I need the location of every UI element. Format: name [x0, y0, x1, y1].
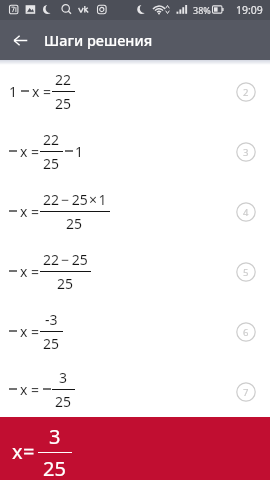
staticText: 7	[243, 386, 249, 399]
button[interactable]: x	[0, 180, 270, 240]
staticText: =	[31, 262, 40, 281]
staticText: 6	[243, 326, 249, 339]
staticText: 25	[43, 334, 60, 353]
staticText: 4	[243, 206, 249, 219]
button[interactable]: x	[0, 360, 270, 417]
button[interactable]: Back	[0, 20, 40, 60]
button[interactable]: Step 7	[237, 383, 255, 401]
button[interactable]: x	[0, 120, 270, 180]
staticText: 25	[43, 154, 60, 173]
staticText: =	[23, 438, 35, 465]
staticText: =	[31, 380, 40, 399]
button[interactable]: 1	[0, 60, 270, 120]
staticText: 1	[75, 142, 84, 161]
staticText: x	[20, 142, 28, 161]
staticText: -3	[45, 310, 58, 329]
staticText: 25	[55, 94, 72, 113]
staticText: 25	[66, 214, 83, 233]
staticText: =	[43, 82, 52, 101]
staticText: 3	[49, 423, 61, 450]
staticText: x	[20, 262, 28, 281]
staticText: 19:09	[236, 3, 263, 17]
staticText: 1	[9, 82, 18, 101]
button[interactable]: x	[0, 300, 270, 360]
staticText: 25	[57, 274, 74, 293]
staticText: 22	[43, 130, 60, 149]
staticText: 25	[43, 455, 66, 480]
staticText: x	[32, 82, 40, 101]
button[interactable]: Step 2	[237, 83, 255, 101]
staticText: x	[20, 202, 28, 221]
staticText: Шаги решения	[44, 30, 153, 50]
staticText: 5	[243, 266, 249, 279]
button[interactable]: x	[0, 240, 270, 300]
staticText: 25	[55, 392, 72, 411]
staticText: 22	[55, 70, 72, 89]
staticText: 22 − 25	[43, 250, 88, 269]
staticText: x	[20, 322, 28, 341]
staticText: =	[31, 322, 40, 341]
staticText: 22 − 25 × 1	[43, 190, 107, 209]
staticText: x	[12, 438, 23, 465]
staticText: 3	[59, 368, 68, 387]
staticText: x	[20, 380, 28, 399]
staticText: 2	[243, 86, 249, 99]
staticText: =	[31, 142, 40, 161]
button[interactable]: Step 4	[237, 203, 255, 221]
button[interactable]: Step 5	[237, 263, 255, 281]
staticText: 38%	[193, 4, 211, 16]
staticText: 3	[243, 146, 249, 159]
staticText: =	[31, 202, 40, 221]
button[interactable]: Step 3	[237, 143, 255, 161]
button[interactable]: Step 6	[237, 323, 255, 341]
